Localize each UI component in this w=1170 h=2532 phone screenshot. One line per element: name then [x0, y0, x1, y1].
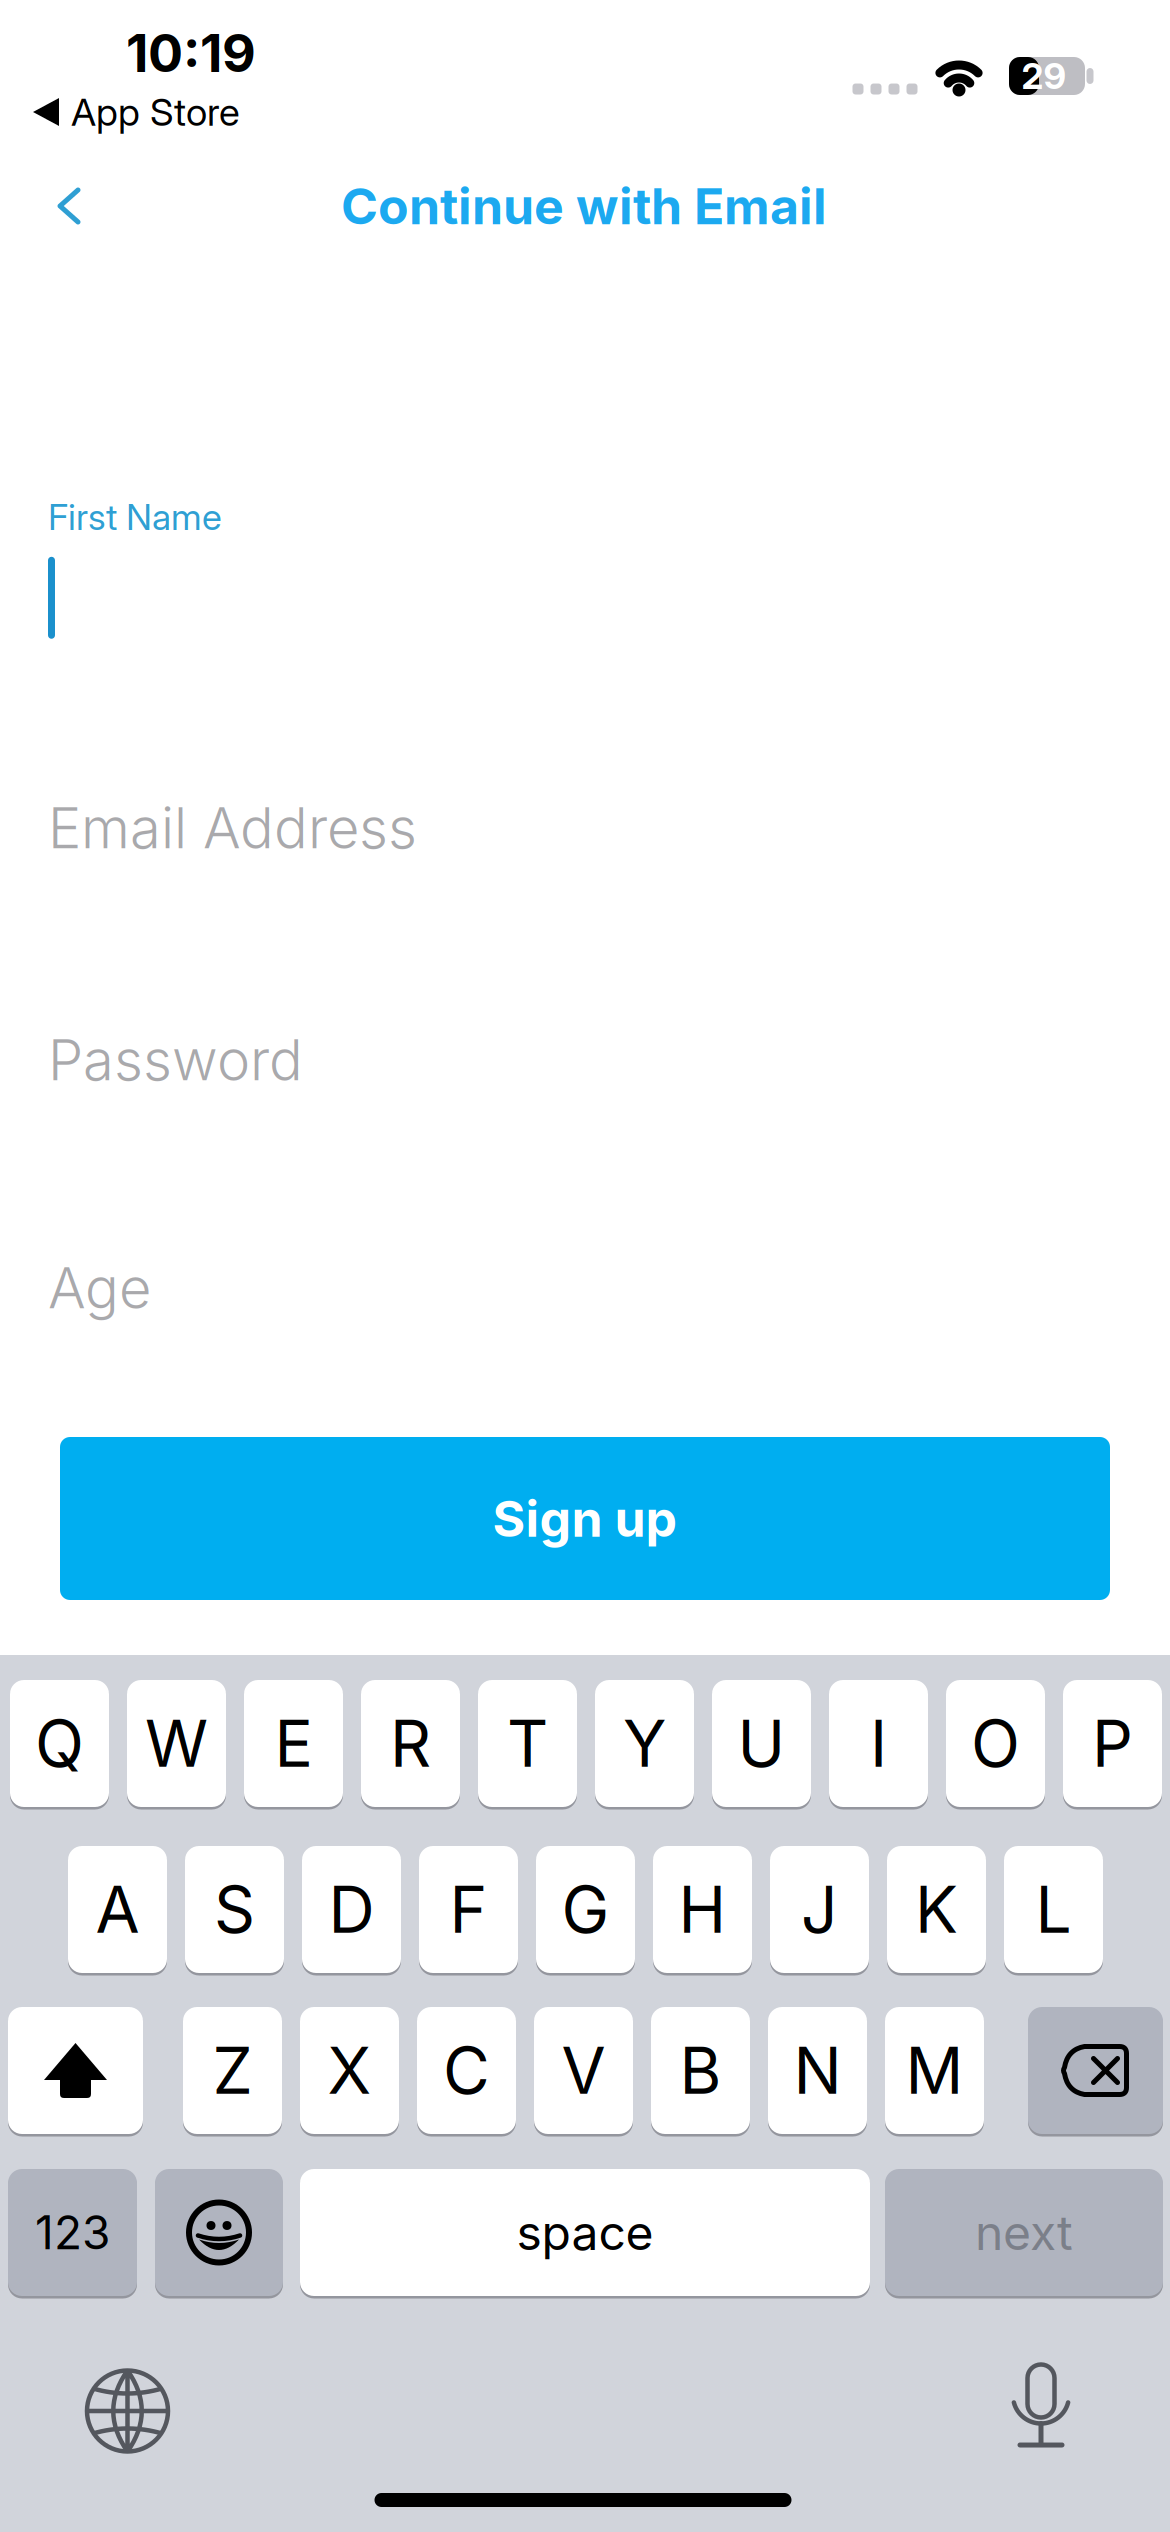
- button[interactable]: space: [300, 2169, 870, 2296]
- button[interactable]: Shift: [8, 2007, 143, 2134]
- button[interactable]: X: [300, 2007, 399, 2134]
- button[interactable]: W: [127, 1680, 226, 1807]
- staticText: First Name: [48, 495, 222, 539]
- staticText: Password: [48, 1026, 303, 1094]
- staticText: next: [975, 2203, 1073, 2262]
- button[interactable]: G: [536, 1846, 635, 1973]
- staticText: E: [274, 1705, 312, 1782]
- button[interactable]: Back: [59, 189, 79, 223]
- button[interactable]: Q: [10, 1680, 109, 1807]
- staticText: C: [443, 2032, 490, 2109]
- button[interactable]: Emoji: [155, 2169, 283, 2296]
- staticText: 29: [1021, 54, 1066, 98]
- button[interactable]: Y: [595, 1680, 694, 1807]
- button[interactable]: Password: [48, 1026, 1122, 1094]
- button[interactable]: R: [361, 1680, 460, 1807]
- button[interactable]: O: [946, 1680, 1045, 1807]
- button[interactable]: Age: [48, 1254, 1122, 1322]
- staticText: X: [327, 2032, 371, 2109]
- staticText: W: [145, 1705, 208, 1782]
- button[interactable]: First Name: [48, 495, 1122, 639]
- button[interactable]: A: [68, 1846, 167, 1973]
- button[interactable]: Numbers: [8, 2169, 137, 2296]
- staticText: Q: [35, 1705, 84, 1782]
- button[interactable]: M: [885, 2007, 984, 2134]
- staticText: K: [915, 1871, 958, 1948]
- staticText: F: [449, 1871, 487, 1948]
- button[interactable]: T: [478, 1680, 577, 1807]
- staticText: R: [390, 1705, 431, 1782]
- button[interactable]: L: [1004, 1846, 1103, 1973]
- staticText: H: [678, 1871, 726, 1948]
- button[interactable]: K: [887, 1846, 986, 1973]
- staticText: J: [801, 1871, 838, 1948]
- staticText: U: [737, 1705, 785, 1782]
- staticText: O: [971, 1705, 1020, 1782]
- staticText: Y: [623, 1705, 666, 1782]
- button[interactable]: next: [885, 2169, 1163, 2296]
- button[interactable]: H: [653, 1846, 752, 1973]
- button[interactable]: Next keyboard: [87, 2370, 168, 2451]
- button[interactable]: Back to App Store: [33, 89, 433, 135]
- staticText: Continue with Email: [341, 176, 827, 236]
- staticText: 123: [35, 2205, 110, 2260]
- staticText: T: [507, 1705, 548, 1782]
- staticText: App Store: [71, 89, 240, 135]
- button[interactable]: S: [185, 1846, 284, 1973]
- button[interactable]: N: [768, 2007, 867, 2134]
- staticText: Sign up: [492, 1488, 677, 1549]
- button[interactable]: Email Address: [48, 794, 1122, 862]
- staticText: L: [1035, 1871, 1071, 1948]
- staticText: I: [870, 1705, 887, 1782]
- staticText: 10:19: [126, 21, 256, 84]
- staticText: B: [679, 2032, 721, 2109]
- button[interactable]: B: [651, 2007, 750, 2134]
- staticText: N: [793, 2032, 841, 2109]
- staticText: P: [1092, 1705, 1133, 1782]
- button[interactable]: C: [417, 2007, 516, 2134]
- staticText: V: [561, 2032, 605, 2109]
- staticText: M: [905, 2032, 963, 2109]
- button[interactable]: Sign up: [60, 1437, 1110, 1600]
- staticText: D: [328, 1871, 374, 1948]
- button[interactable]: Z: [183, 2007, 282, 2134]
- staticText: G: [561, 1871, 609, 1948]
- button[interactable]: Dictation: [1013, 2364, 1069, 2447]
- staticText: space: [516, 2203, 653, 2262]
- button[interactable]: D: [302, 1846, 401, 1973]
- button[interactable]: J: [770, 1846, 869, 1973]
- button[interactable]: P: [1063, 1680, 1162, 1807]
- button[interactable]: F: [419, 1846, 518, 1973]
- button[interactable]: E: [244, 1680, 343, 1807]
- staticText: Age: [48, 1254, 151, 1322]
- staticText: Email Address: [48, 794, 417, 862]
- staticText: A: [95, 1871, 139, 1948]
- button[interactable]: U: [712, 1680, 811, 1807]
- staticText: S: [214, 1871, 255, 1948]
- button[interactable]: Delete: [1028, 2007, 1163, 2134]
- button[interactable]: V: [534, 2007, 633, 2134]
- button[interactable]: I: [829, 1680, 928, 1807]
- staticText: Z: [212, 2032, 252, 2109]
